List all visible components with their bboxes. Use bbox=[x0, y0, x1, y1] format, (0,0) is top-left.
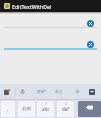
button[interactable]: 分词 bbox=[18, 101, 35, 117]
button[interactable]: Emoji keyboard bbox=[4, 89, 10, 95]
staticText: 3 bbox=[65, 102, 67, 106]
button[interactable]: 3 bbox=[57, 101, 74, 117]
button[interactable]: 2 bbox=[37, 101, 54, 117]
staticText: 拼音 bbox=[37, 89, 45, 94]
staticText: abc bbox=[42, 106, 50, 112]
staticText: EditTextWithDel bbox=[12, 3, 52, 10]
button[interactable]: Delete bbox=[78, 101, 101, 117]
staticText: , bbox=[7, 106, 9, 112]
button[interactable]: , bbox=[1, 101, 15, 117]
button[interactable]: App icon bbox=[4, 3, 10, 9]
staticText: 分词 bbox=[22, 106, 31, 112]
button[interactable]: Clear text bbox=[87, 41, 94, 48]
staticText: 2 bbox=[45, 102, 47, 106]
button[interactable]: Voice input bbox=[20, 89, 25, 94]
button[interactable]: Move keyboard bbox=[75, 89, 80, 94]
button[interactable]: 英文 bbox=[55, 88, 63, 94]
button[interactable]: 拼音 bbox=[36, 88, 47, 94]
button[interactable]: Hide keyboard bbox=[89, 89, 95, 95]
staticText: 英文 bbox=[55, 89, 63, 94]
staticText: def bbox=[62, 106, 69, 112]
button[interactable]: Clear text bbox=[87, 20, 94, 27]
